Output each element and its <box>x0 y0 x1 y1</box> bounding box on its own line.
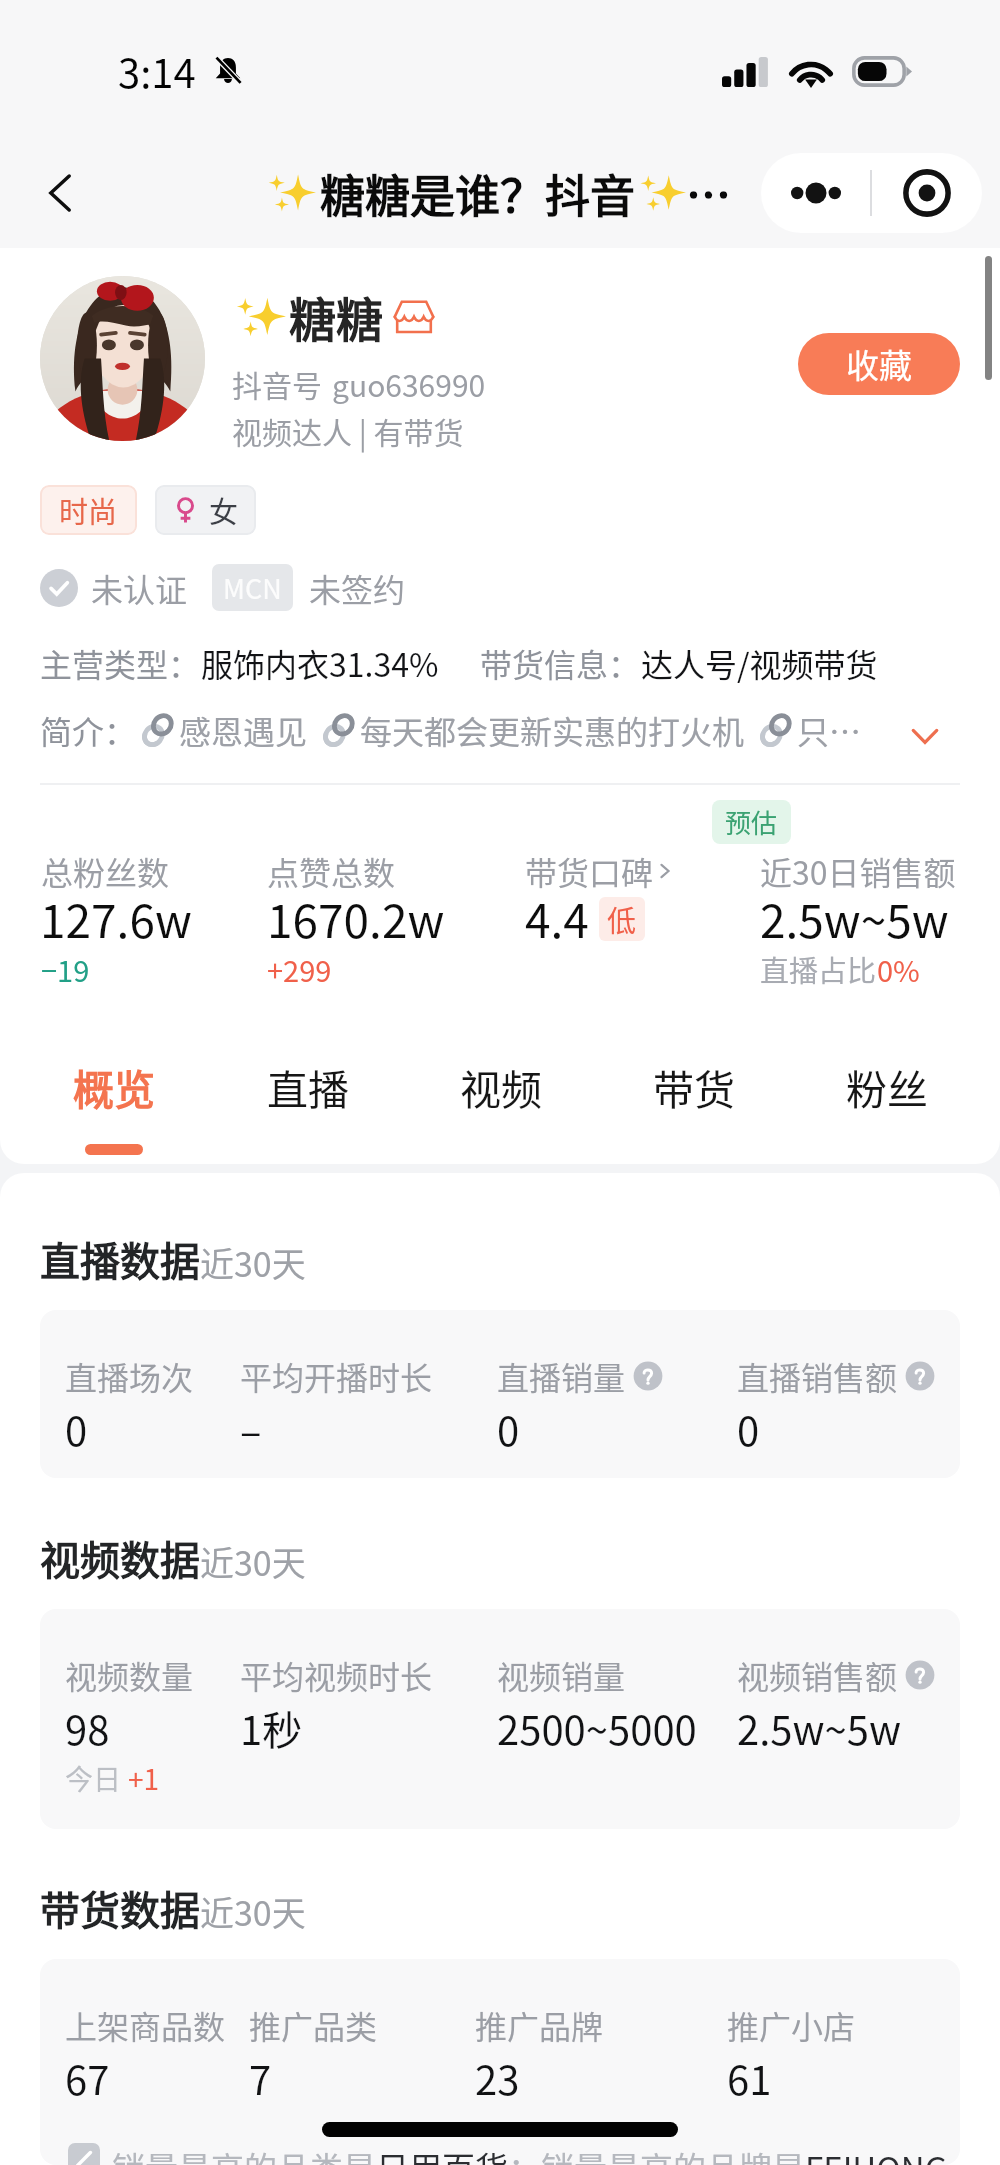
staticText: … <box>686 161 732 226</box>
button[interactable]: 概览 <box>17 1005 211 1155</box>
staticText: 低 <box>607 898 637 940</box>
staticText: 2500~5000 <box>497 1699 697 1757</box>
staticText: 视频数量 <box>65 1652 194 1698</box>
staticText: 每天都会更新实惠的打火机 <box>360 707 745 753</box>
staticText: 直播销售额 <box>737 1353 898 1399</box>
staticText: 带货口碑 <box>525 848 654 894</box>
staticText: 1秒 <box>240 1699 303 1757</box>
staticText: 简介： <box>40 707 137 753</box>
staticText: 女 <box>209 489 239 531</box>
staticText: 4.4 <box>525 885 589 952</box>
staticText: 达人号/视频带货 <box>641 640 878 686</box>
staticText: 上架商品数 <box>65 2002 226 2048</box>
staticText: 0 <box>65 1400 88 1458</box>
staticText: 糖糖是谁？抖音 <box>320 161 636 226</box>
staticText: 预估 <box>725 803 778 841</box>
staticText: 直播销量 <box>497 1353 626 1399</box>
staticText: 带货 <box>653 1057 735 1116</box>
staticText: 未认证 <box>91 565 188 611</box>
staticText: 销量最高的品类是 <box>112 2143 376 2165</box>
staticText: 视频数据 <box>40 1529 200 1587</box>
staticText: 127.6w <box>40 885 192 952</box>
staticText: 未签约 <box>309 565 406 611</box>
button[interactable]: Expand description <box>896 707 954 765</box>
staticText: 推广品牌 <box>475 2002 604 2048</box>
button[interactable]: 视频 <box>404 1005 597 1155</box>
staticText: 带货数据 <box>40 1879 200 1937</box>
staticText: 98 <box>65 1699 110 1757</box>
staticText: 0 <box>737 1400 760 1458</box>
staticText: 直播场次 <box>65 1353 194 1399</box>
staticText: 收藏 <box>846 340 912 388</box>
staticText: 推广小店 <box>727 2002 856 2048</box>
staticText: 服饰内衣31.34% <box>201 640 439 686</box>
staticText: 时尚 <box>59 489 118 531</box>
staticText: 视频达人 | 有带货 <box>232 409 464 452</box>
staticText: 0 <box>497 1400 520 1458</box>
staticText: 2.5w~5w <box>760 885 949 952</box>
staticText: 0% <box>877 948 920 990</box>
staticText: 61 <box>727 2049 772 2107</box>
staticText: 近30天 <box>200 1887 306 1936</box>
button[interactable]: 女 <box>155 485 256 535</box>
staticText: −19 <box>41 948 90 990</box>
staticText: 67 <box>65 2049 110 2107</box>
staticText: guo636990 <box>332 362 486 405</box>
staticText: +299 <box>267 948 332 990</box>
staticText: 粉丝 <box>846 1057 928 1116</box>
staticText: 2.5w~5w <box>737 1699 902 1757</box>
button[interactable]: Close mini program <box>872 153 982 233</box>
staticText: 视频 <box>460 1057 542 1116</box>
staticText: 概览 <box>73 1057 155 1116</box>
staticText: 直播数据 <box>40 1230 200 1288</box>
staticText: – <box>240 1400 262 1458</box>
staticText: ；销量最高的品牌是 <box>508 2143 805 2165</box>
staticText: FEIHONG/飞弘 <box>805 2143 960 2165</box>
staticText: 直播 <box>267 1057 349 1116</box>
staticText: 7 <box>249 2049 272 2107</box>
button[interactable]: 粉丝 <box>790 1005 983 1155</box>
staticText: 总粉丝数 <box>41 848 170 894</box>
staticText: 抖音号 <box>232 362 322 405</box>
staticText: 平均视频时长 <box>240 1652 433 1698</box>
button[interactable]: Back <box>22 155 98 231</box>
staticText: MCN <box>223 568 282 607</box>
button[interactable]: 时尚 <box>40 485 137 535</box>
staticText: 23 <box>475 2049 520 2107</box>
staticText: 带货信息： <box>480 640 641 686</box>
staticText: 日用百货 <box>376 2143 508 2165</box>
staticText: 点赞总数 <box>267 848 396 894</box>
staticText: 3:14 <box>118 42 196 100</box>
staticText: 糖糖 <box>289 282 383 350</box>
staticText: 视频销售额 <box>737 1652 898 1698</box>
staticText: 视频销量 <box>497 1652 626 1698</box>
staticText: 近30天 <box>200 1537 306 1586</box>
staticText: 直播占比 <box>760 948 877 990</box>
button[interactable]: 直播 <box>211 1005 404 1155</box>
staticText: 只… <box>797 707 862 753</box>
button[interactable]: 带货 <box>597 1005 790 1155</box>
staticText: 平均开播时长 <box>240 1353 433 1399</box>
button[interactable]: More options <box>761 153 870 233</box>
staticText: 推广品类 <box>249 2002 378 2048</box>
staticText: 近30天 <box>200 1238 306 1287</box>
button[interactable]: Profile avatar <box>40 276 205 441</box>
button[interactable]: 收藏 <box>798 333 960 395</box>
staticText: 感恩遇见 <box>179 707 308 753</box>
staticText: +1 <box>128 1758 160 1799</box>
staticText: 近30日销售额 <box>760 848 956 894</box>
staticText: 今日 <box>65 1758 122 1799</box>
staticText: 1670.2w <box>267 885 445 952</box>
staticText: 主营类型： <box>40 640 201 686</box>
